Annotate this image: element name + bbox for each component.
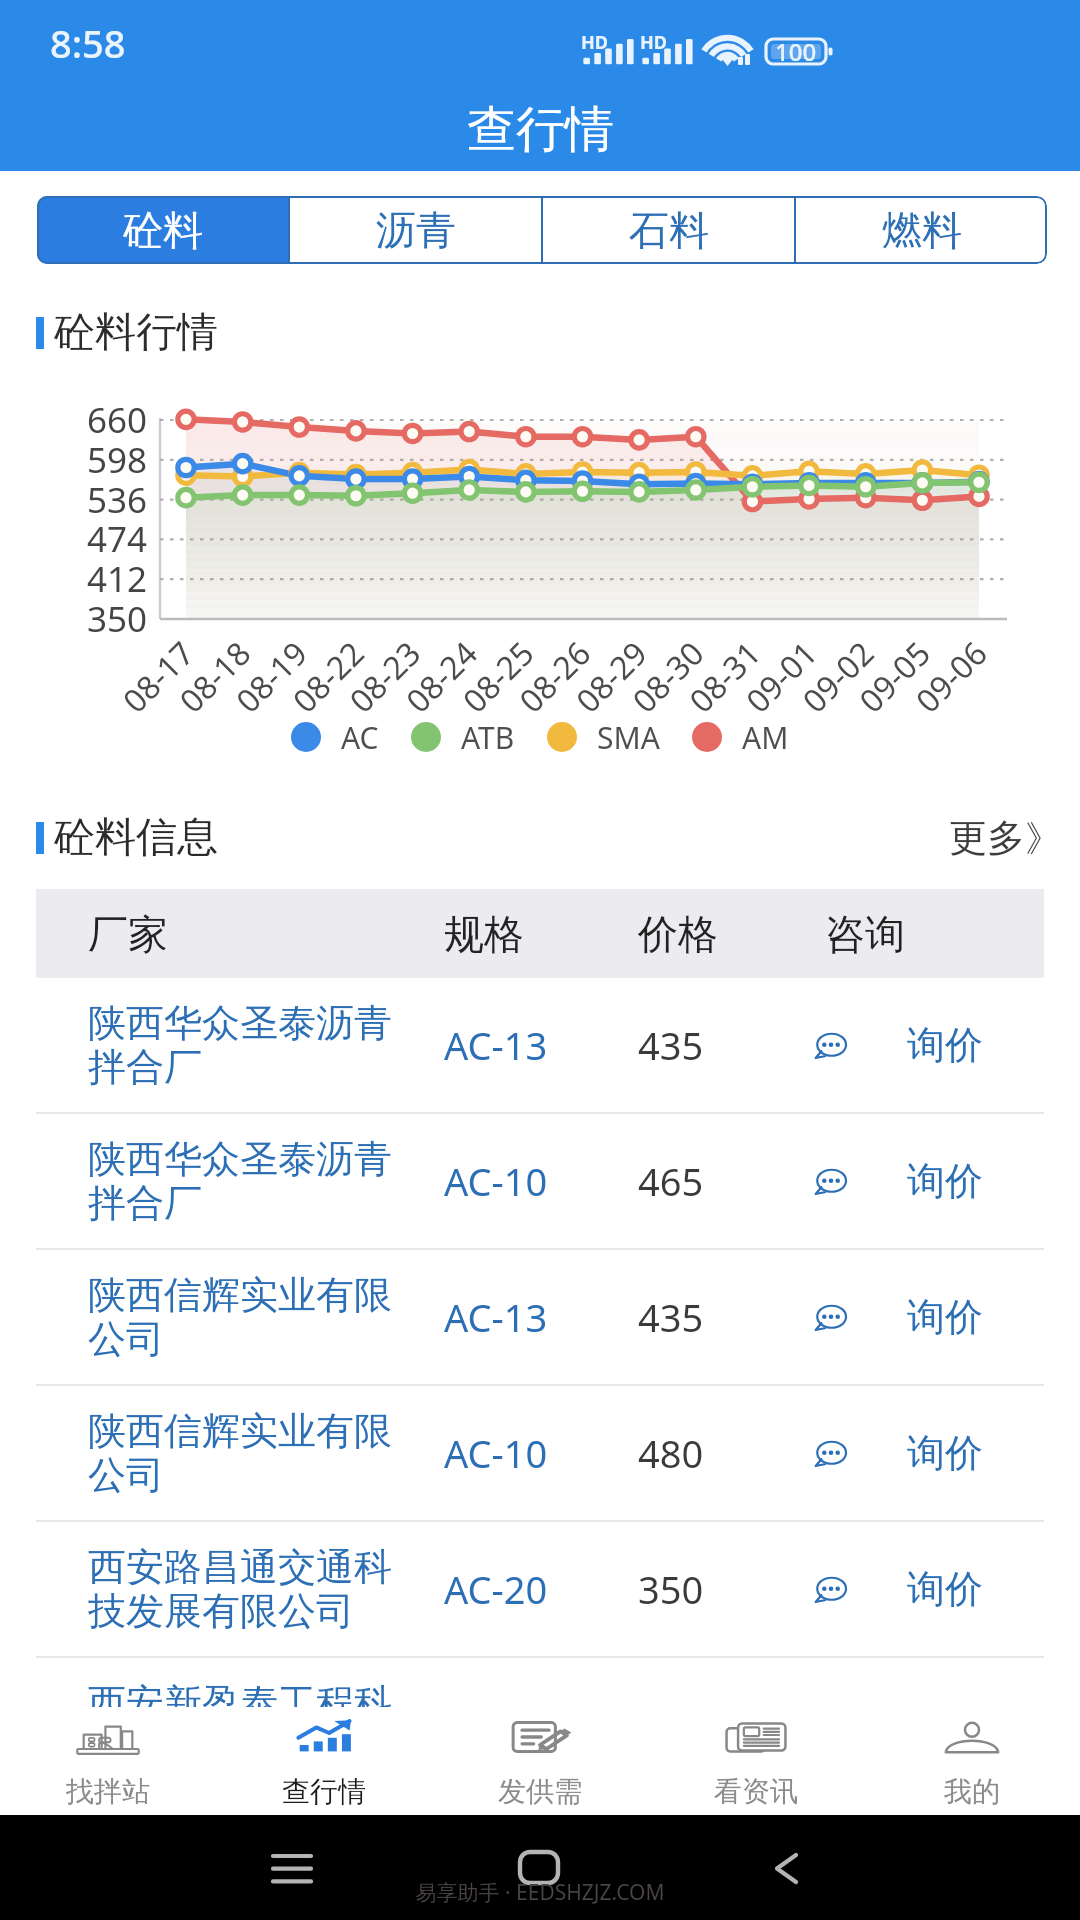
- staticText: 砼料行情: [54, 307, 218, 359]
- staticText: 350: [638, 1563, 704, 1615]
- button[interactable]: 咨询: [815, 1033, 847, 1058]
- button[interactable]: 西安新盈泰工程科技有限公司: [36, 1658, 1044, 1792]
- staticText: AC-13: [444, 1291, 548, 1343]
- staticText: AC-13: [444, 1019, 548, 1071]
- button[interactable]: 查行情: [216, 1707, 432, 1815]
- button[interactable]: 询价: [907, 1565, 983, 1613]
- staticText: 规格: [444, 909, 524, 959]
- button[interactable]: 沥青: [290, 196, 541, 264]
- button[interactable]: 燃料: [796, 196, 1047, 264]
- button[interactable]: 咨询: [815, 1305, 847, 1330]
- button[interactable]: 询价: [907, 1157, 983, 1205]
- staticText: 8:58: [50, 17, 126, 69]
- staticText: 价格: [638, 909, 718, 959]
- button[interactable]: 咨询: [815, 1577, 847, 1602]
- staticText: 陕西信辉实业有限公司: [88, 1407, 408, 1499]
- staticText: 更多: [949, 814, 1025, 862]
- button[interactable]: 咨询: [815, 1169, 847, 1194]
- button[interactable]: 咨询: [815, 1441, 847, 1466]
- staticText: 看资讯: [714, 1774, 798, 1809]
- button[interactable]: 石料: [543, 196, 794, 264]
- button[interactable]: 陕西信辉实业有限公司: [36, 1386, 1044, 1520]
- staticText: 435: [638, 1019, 704, 1071]
- button[interactable]: 陕西华众圣泰沥青拌合厂: [36, 1114, 1044, 1248]
- staticText: 找拌站: [66, 1774, 150, 1809]
- staticText: 我的: [944, 1774, 1000, 1809]
- button[interactable]: 询价: [907, 1021, 983, 1069]
- button[interactable]: 找拌站: [0, 1707, 216, 1815]
- button[interactable]: 更多: [945, 812, 1065, 864]
- staticText: AC-10: [444, 1155, 548, 1207]
- button[interactable]: 询价: [907, 1701, 983, 1749]
- button[interactable]: Home: [500, 1832, 580, 1904]
- staticText: 陕西华众圣泰沥青拌合厂: [88, 999, 408, 1091]
- staticText: 石料: [629, 205, 709, 255]
- staticText: 480: [638, 1427, 704, 1479]
- button[interactable]: 我的: [864, 1707, 1080, 1815]
- staticText: 西安路昌通交通科技发展有限公司: [88, 1543, 408, 1635]
- staticText: AC-20: [444, 1563, 548, 1615]
- staticText: 燃料: [882, 205, 962, 255]
- staticText: 砼料信息: [54, 812, 218, 864]
- button[interactable]: 陕西信辉实业有限公司: [36, 1250, 1044, 1384]
- staticText: 435: [638, 1291, 704, 1343]
- staticText: 465: [638, 1155, 704, 1207]
- button[interactable]: Back: [757, 1835, 827, 1901]
- staticText: AC-13: [444, 1699, 548, 1751]
- staticText: 砼料: [123, 205, 203, 255]
- button[interactable]: 发供需: [432, 1707, 648, 1815]
- staticText: 查行情: [282, 1774, 366, 1809]
- button[interactable]: 询价: [907, 1429, 983, 1477]
- staticText: 发供需: [498, 1774, 582, 1809]
- button[interactable]: 询价: [907, 1293, 983, 1341]
- staticText: 查行情: [467, 99, 614, 161]
- staticText: 西安新盈泰工程科技有限公司: [88, 1679, 408, 1771]
- staticText: 沥青: [376, 205, 456, 255]
- staticText: 陕西华众圣泰沥青拌合厂: [88, 1135, 408, 1227]
- button[interactable]: Recent apps: [250, 1835, 334, 1901]
- button[interactable]: 看资讯: [648, 1707, 864, 1815]
- staticText: AC-10: [444, 1427, 548, 1479]
- button[interactable]: 西安路昌通交通科技发展有限公司: [36, 1522, 1044, 1656]
- staticText: 陕西信辉实业有限公司: [88, 1271, 408, 1363]
- button[interactable]: 砼料: [37, 196, 288, 264]
- staticText: 厂家: [88, 909, 168, 959]
- button[interactable]: 陕西华众圣泰沥青拌合厂: [36, 978, 1044, 1112]
- staticText: 咨询: [825, 909, 905, 959]
- staticText: 》: [1025, 816, 1061, 861]
